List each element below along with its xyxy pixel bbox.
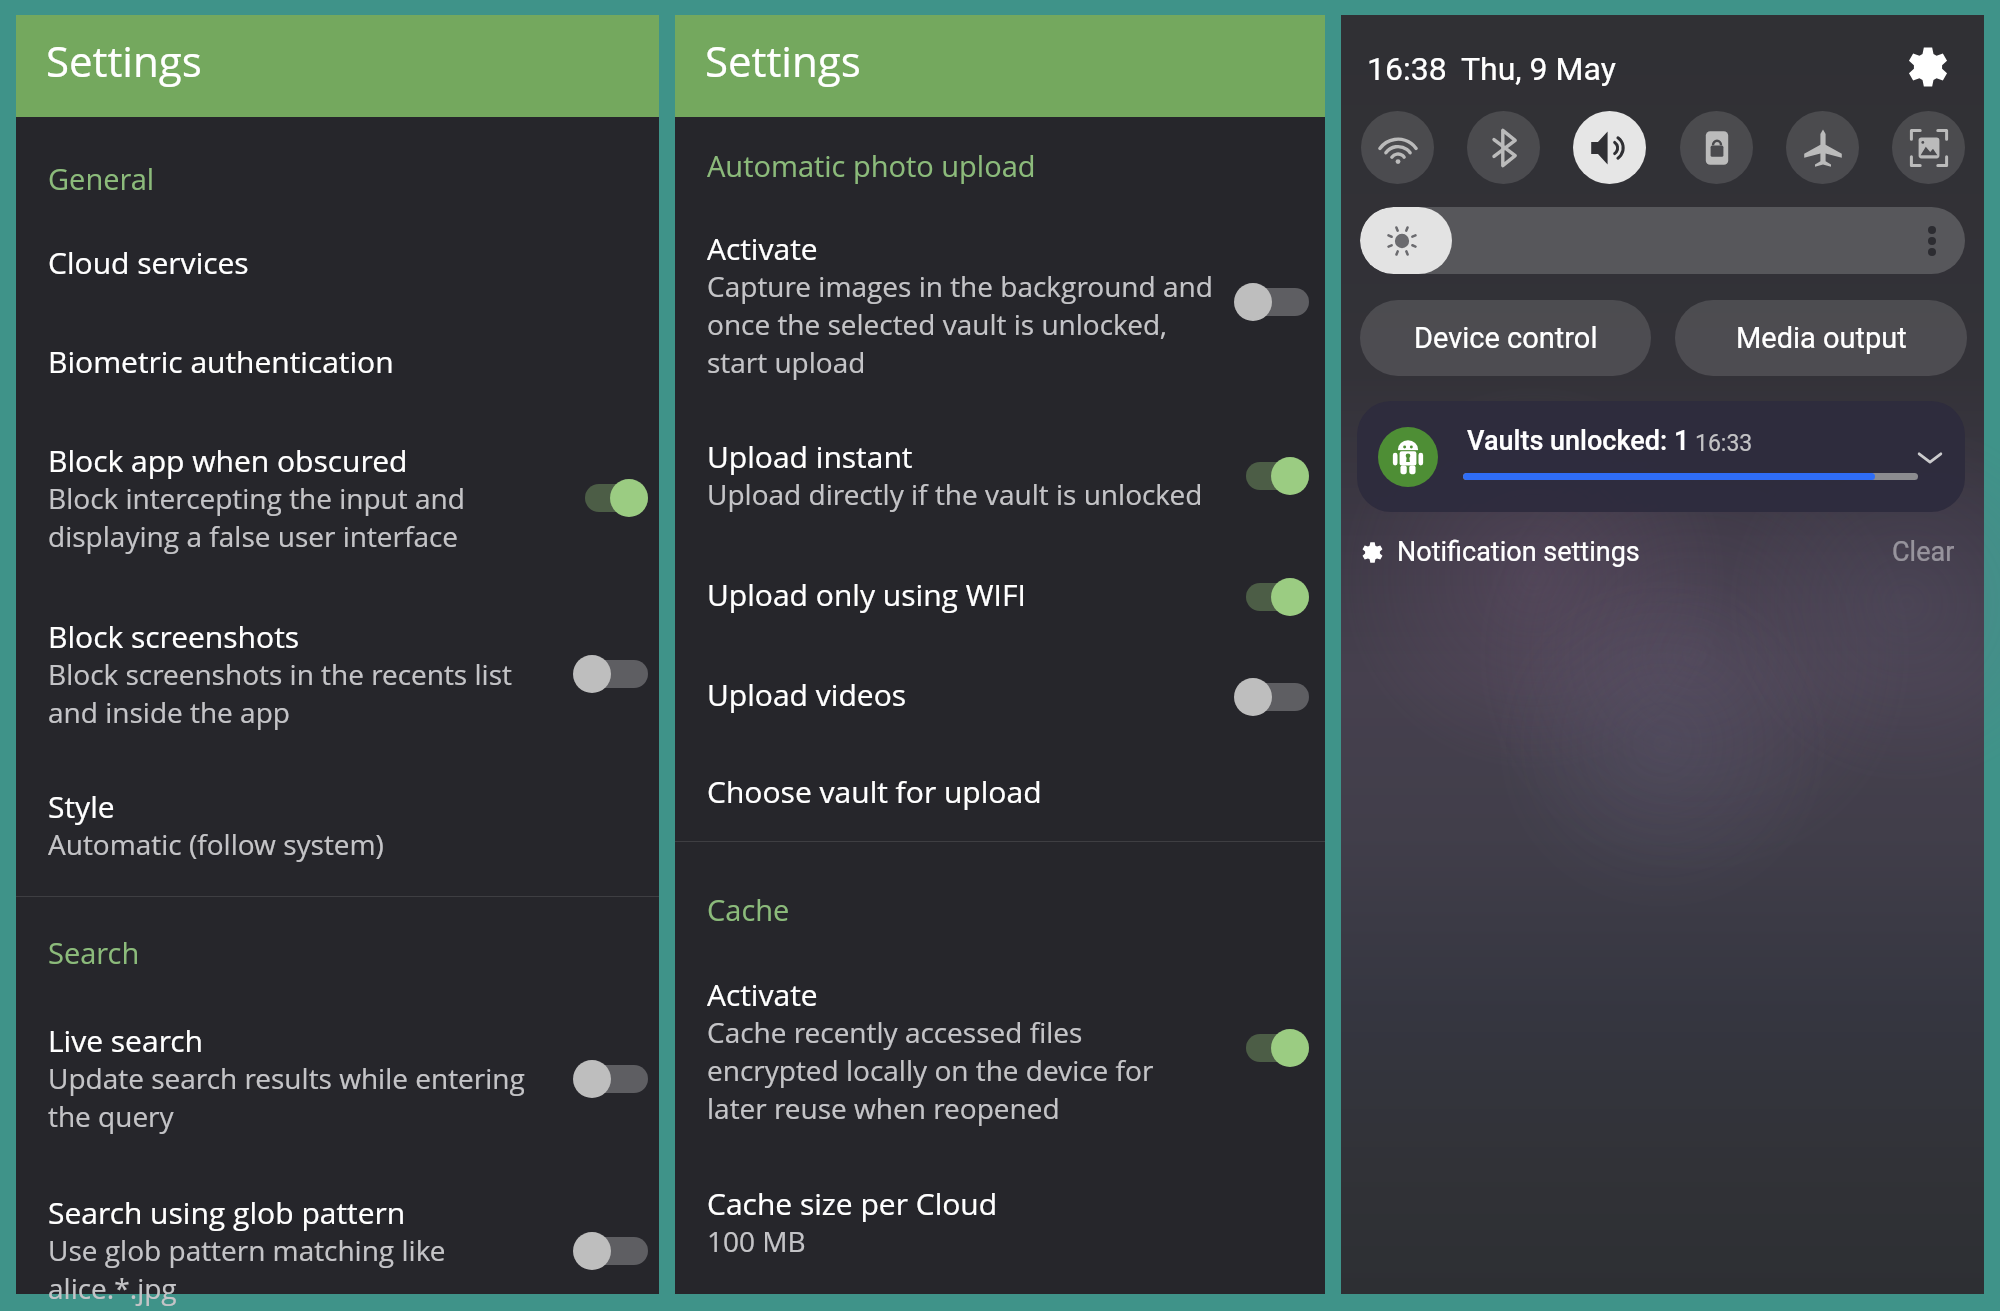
staticText: Upload only using WIFI [707, 574, 1026, 615]
staticText: Use glob pattern matching like alice.*.j… [48, 1231, 468, 1307]
button[interactable]: Brightness [1360, 207, 1965, 274]
button[interactable]: Media output [1675, 300, 1967, 376]
button[interactable]: Block app when obscured [16, 440, 659, 557]
staticText: Thu, 9 May [1461, 50, 1616, 88]
button[interactable]: Activate [1246, 283, 1309, 321]
button[interactable]: Notification settings [1354, 530, 1648, 574]
button[interactable]: Choose vault for upload [675, 771, 1325, 812]
staticText: Activate [707, 228, 818, 269]
button[interactable]: Biometric authentication [16, 341, 659, 382]
staticText: Device control [1414, 321, 1598, 355]
staticText: Biometric authentication [48, 341, 394, 382]
button[interactable]: Cloud services [16, 242, 659, 283]
button[interactable]: Expand notification [1911, 438, 1949, 476]
staticText: Block screenshots in the recents list an… [48, 655, 548, 731]
button[interactable]: Cache size per Cloud [675, 1183, 1325, 1262]
button[interactable]: Block screenshots [585, 655, 648, 693]
staticText: 100 MB [707, 1222, 806, 1260]
staticText: Upload videos [707, 674, 907, 715]
button[interactable]: Search using glob pattern [16, 1192, 659, 1309]
button[interactable]: Settings [1907, 46, 1949, 88]
button[interactable]: Upload instant [1246, 457, 1309, 495]
staticText: Cloud services [48, 242, 249, 283]
staticText: Block screenshots [48, 616, 300, 657]
button[interactable]: Airplane mode [1786, 111, 1859, 184]
staticText: Style [48, 786, 115, 827]
staticText: Live search [48, 1020, 203, 1061]
button[interactable]: Block app when obscured [585, 479, 648, 517]
button[interactable]: Live search [16, 1020, 659, 1137]
staticText: Search using glob pattern [48, 1192, 406, 1233]
staticText: 16:33 [1695, 430, 1753, 457]
staticText: Settings [46, 32, 202, 89]
staticText: Automatic photo upload [707, 146, 1036, 185]
staticText: Update search results while entering the… [48, 1059, 553, 1135]
staticText: 16:38 [1367, 50, 1447, 88]
staticText: Settings [705, 32, 861, 89]
staticText: Cache size per Cloud [707, 1183, 998, 1224]
staticText: General [48, 159, 155, 198]
button[interactable]: Upload videos [1246, 678, 1309, 716]
staticText: Block app when obscured [48, 440, 408, 481]
button[interactable]: Upload only using WIFI [675, 574, 1325, 615]
staticText: Capture images in the background and onc… [707, 267, 1223, 381]
staticText: Notification settings [1397, 536, 1640, 568]
staticText: Automatic (follow system) [48, 825, 384, 863]
staticText: Vaults unlocked: 1 [1467, 425, 1690, 457]
button[interactable]: Search using glob pattern [585, 1232, 648, 1270]
button[interactable]: Sound [1573, 111, 1646, 184]
staticText: Media output [1736, 321, 1907, 355]
button[interactable]: Block screenshots [16, 616, 659, 733]
button[interactable]: Bluetooth [1467, 111, 1540, 184]
button[interactable]: Screenshot [1892, 111, 1965, 184]
button[interactable]: Upload instant [675, 436, 1325, 515]
button[interactable]: Screen lock [1680, 111, 1753, 184]
button[interactable]: Style [16, 786, 659, 865]
staticText: Cache recently accessed files encrypted … [707, 1013, 1170, 1127]
staticText: Block intercepting the input and display… [48, 479, 500, 555]
button[interactable]: Device control [1360, 300, 1651, 376]
staticText: Upload directly if the vault is unlocked [707, 475, 1203, 513]
staticText: Search [48, 933, 140, 972]
button[interactable]: Wi-Fi [1361, 111, 1434, 184]
staticText: Choose vault for upload [707, 771, 1042, 812]
button[interactable]: Activate [675, 228, 1325, 383]
button[interactable]: Clear [1892, 536, 1955, 568]
button[interactable]: Upload videos [675, 674, 1325, 715]
staticText: Cache [707, 890, 790, 929]
staticText: Activate [707, 974, 818, 1015]
button[interactable]: Vaults unlocked: 1 [1357, 401, 1965, 512]
button[interactable]: Upload only using WIFI [1246, 578, 1309, 616]
button[interactable]: Activate [1246, 1029, 1309, 1067]
button[interactable]: Live search [585, 1060, 648, 1098]
button[interactable]: Activate [675, 974, 1325, 1129]
staticText: Upload instant [707, 436, 913, 477]
